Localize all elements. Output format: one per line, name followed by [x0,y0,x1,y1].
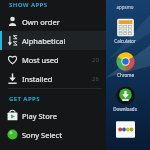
staticText: Calculator [114,38,136,44]
button[interactable]: Calculator [108,18,142,44]
button[interactable]: Chrome [108,52,142,78]
button[interactable]: Downloads [108,86,142,112]
staticText: 20 [92,56,99,64]
staticText: Downloads [113,106,137,112]
staticText: SHOW APPS [9,1,48,9]
button[interactable]: Play Store [0,106,106,125]
button[interactable]: Sony Select [0,125,106,144]
staticText: 26 [92,75,99,83]
staticText: Sony Select [22,130,99,140]
staticText: GET APPS [9,95,40,103]
staticText: Own order [22,17,99,27]
button[interactable]: Alphabetical [0,31,106,50]
staticText: Installed [22,74,92,84]
button[interactable]: App [108,120,142,139]
button[interactable]: Own order [0,12,106,31]
staticText: Most used [22,55,92,65]
staticText: appsmo [116,4,134,10]
staticText: Chrome [117,72,134,78]
staticText: Play Store [22,111,99,121]
button[interactable]: Installed [0,69,106,88]
staticText: Alphabetical [22,36,99,46]
button[interactable]: Most used [0,50,106,69]
